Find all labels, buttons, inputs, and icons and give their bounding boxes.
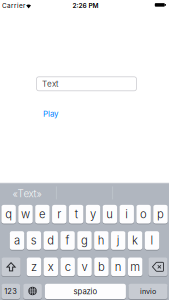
- staticText: l: [150, 234, 153, 247]
- staticText: spazio: [73, 287, 97, 296]
- button[interactable]: g: [77, 231, 92, 250]
- staticText: y: [90, 207, 96, 221]
- staticText: h: [98, 234, 105, 247]
- staticText: Text: [42, 79, 58, 89]
- staticText: q: [5, 207, 12, 221]
- button[interactable]: spazio: [45, 284, 126, 299]
- button[interactable]: Play: [43, 108, 73, 120]
- staticText: Play: [43, 109, 58, 119]
- staticText: k: [132, 234, 138, 247]
- staticText: f: [66, 234, 70, 247]
- staticText: v: [82, 260, 88, 274]
- button[interactable]: Text field: [36, 77, 136, 91]
- button[interactable]: t: [69, 205, 83, 223]
- staticText: Carrier: [2, 2, 25, 9]
- button[interactable]: s: [27, 231, 41, 250]
- staticText: «Text»: [12, 188, 41, 199]
- staticText: o: [140, 207, 147, 221]
- staticText: r: [57, 207, 61, 221]
- button[interactable]: q: [1, 205, 16, 223]
- button[interactable]: l: [145, 231, 159, 250]
- button[interactable]: k: [128, 231, 142, 250]
- button[interactable]: c: [60, 257, 75, 276]
- staticText: 2:26 PM: [73, 2, 99, 9]
- staticText: e: [39, 207, 46, 221]
- staticText: invio: [140, 287, 156, 296]
- staticText: b: [98, 260, 105, 274]
- staticText: g: [81, 234, 88, 247]
- button[interactable]: y: [86, 205, 100, 223]
- staticText: d: [47, 234, 54, 247]
- button[interactable]: x: [44, 257, 58, 276]
- staticText: t: [75, 207, 78, 221]
- button[interactable]: f: [60, 231, 75, 250]
- staticText: c: [65, 260, 71, 274]
- button[interactable]: b: [94, 257, 109, 276]
- button[interactable]: h: [94, 231, 109, 250]
- button[interactable]: 123: [1, 284, 20, 299]
- button[interactable]: «Text»: [0, 184, 55, 203]
- button[interactable]: invio: [128, 284, 167, 299]
- staticText: j: [117, 234, 120, 247]
- button[interactable]: a: [10, 231, 24, 250]
- button[interactable]: r: [52, 205, 66, 223]
- button[interactable]: n: [111, 257, 125, 276]
- staticText: a: [14, 234, 20, 247]
- button[interactable]: z: [27, 257, 41, 276]
- button[interactable]: Next keyboard: [23, 284, 42, 299]
- button[interactable]: Shift: [1, 257, 21, 276]
- button[interactable]: e: [35, 205, 50, 223]
- button[interactable]: Delete: [148, 257, 167, 276]
- staticText: p: [157, 207, 164, 221]
- staticText: u: [106, 207, 113, 221]
- button[interactable]: o: [136, 205, 151, 223]
- button[interactable]: p: [153, 205, 168, 223]
- button[interactable]: w: [18, 205, 33, 223]
- staticText: x: [48, 260, 54, 274]
- staticText: s: [31, 234, 37, 247]
- button[interactable]: v: [77, 257, 92, 276]
- staticText: m: [130, 260, 140, 274]
- button[interactable]: i: [119, 205, 134, 223]
- staticText: n: [115, 260, 122, 274]
- staticText: 123: [4, 287, 17, 296]
- staticText: i: [125, 207, 128, 221]
- button[interactable]: m: [128, 257, 142, 276]
- staticText: z: [31, 260, 37, 274]
- button[interactable]: j: [111, 231, 125, 250]
- staticText: w: [21, 207, 30, 221]
- button[interactable]: d: [43, 231, 58, 250]
- button[interactable]: u: [103, 205, 117, 223]
